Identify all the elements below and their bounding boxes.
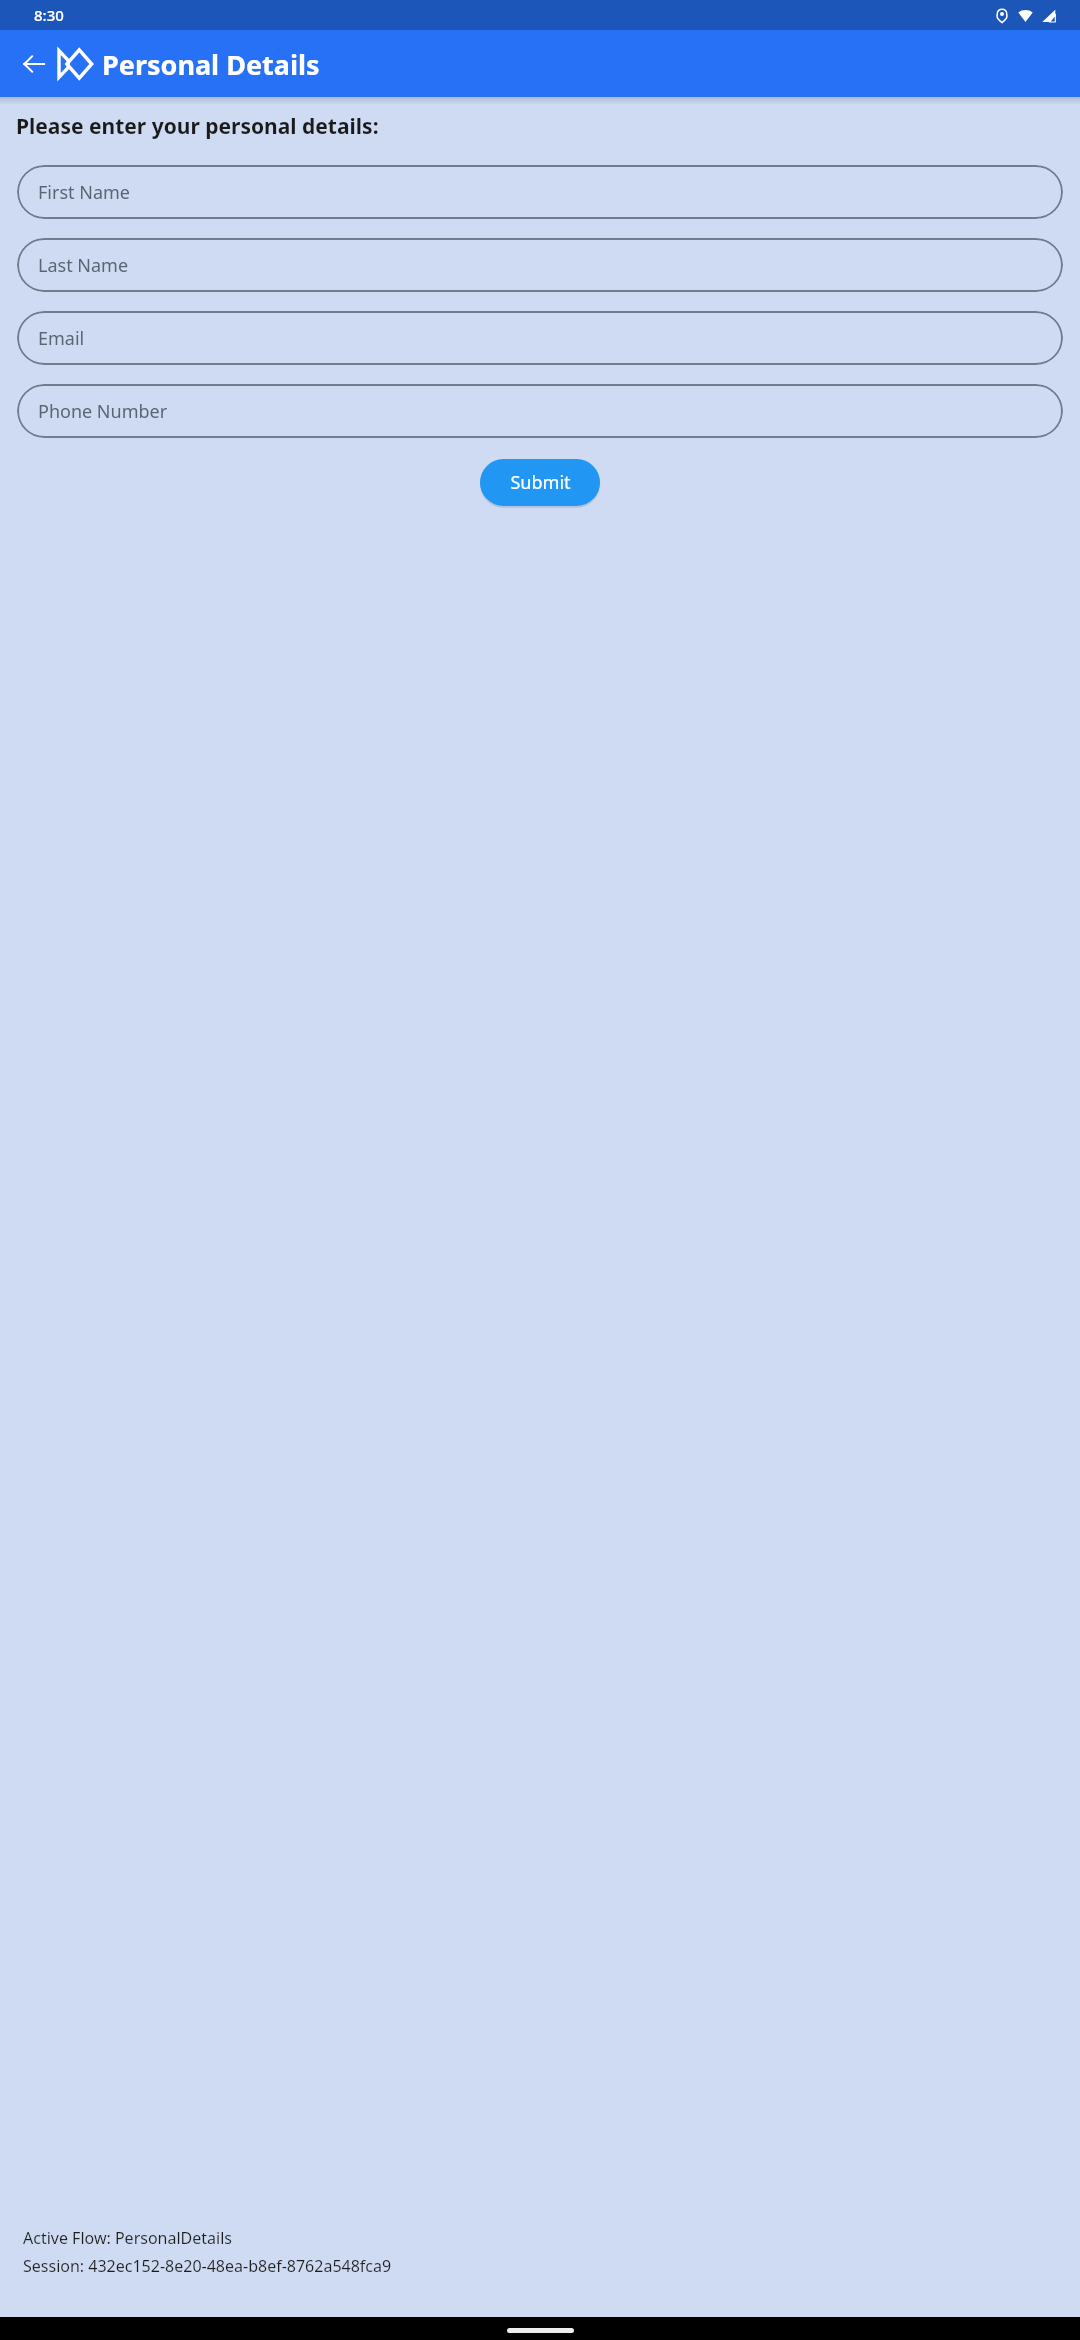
button[interactable]: Back: [12, 42, 56, 86]
staticText: First Name: [38, 180, 130, 205]
staticText: Session: 432ec152-8e20-48ea-b8ef-8762a54…: [23, 2255, 392, 2277]
button[interactable]: Email: [17, 311, 1063, 365]
staticText: 8:30: [34, 5, 64, 25]
button[interactable]: First Name: [17, 165, 1063, 219]
staticText: Active Flow: PersonalDetails: [23, 2227, 232, 2249]
staticText: Submit: [510, 470, 571, 495]
other: App logo: [58, 49, 92, 79]
staticText: Last Name: [38, 253, 129, 278]
button[interactable]: Last Name: [17, 238, 1063, 292]
staticText: Phone Number: [38, 399, 168, 424]
button[interactable]: Phone Number: [17, 384, 1063, 438]
staticText: Please enter your personal details:: [16, 112, 379, 141]
button[interactable]: Submit: [480, 459, 600, 506]
staticText: Personal Details: [102, 46, 320, 83]
staticText: Email: [38, 326, 85, 351]
